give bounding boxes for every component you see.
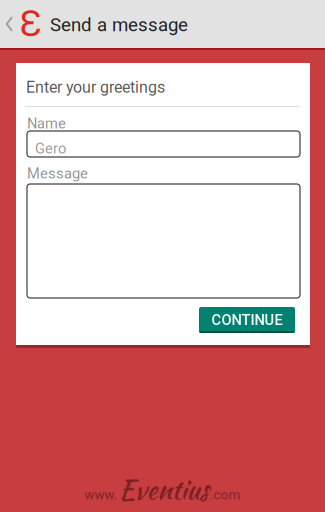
staticText: .com: [209, 487, 240, 502]
staticText: Gero: [35, 140, 66, 157]
staticText: www.: [84, 487, 117, 502]
staticText: Enter your greetings: [26, 78, 165, 97]
staticText: Name: [27, 115, 66, 132]
staticText: Eventius: [118, 470, 208, 509]
button[interactable]: Navigate up: [0, 0, 45, 48]
staticText: Send a message: [50, 14, 188, 36]
button[interactable]: CONTINUE: [199, 307, 295, 333]
staticText: CONTINUE: [211, 311, 282, 329]
staticText: Message: [27, 165, 88, 182]
staticText: Ɛ: [20, 3, 42, 45]
